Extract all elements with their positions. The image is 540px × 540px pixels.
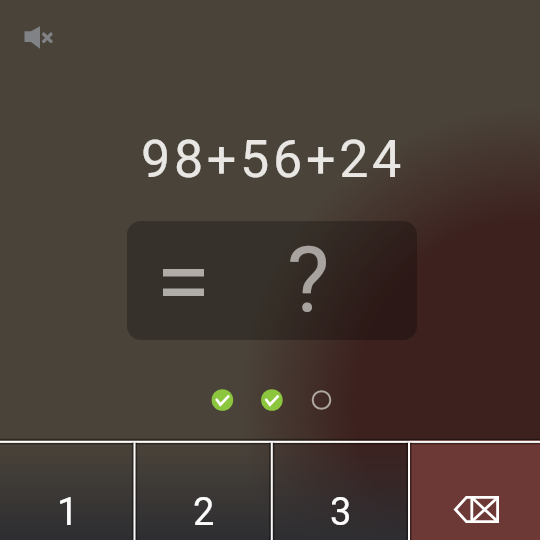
staticText: 1 bbox=[57, 490, 79, 535]
button[interactable]: Mute bbox=[14, 18, 62, 58]
staticText: 3 bbox=[330, 490, 352, 535]
button[interactable]: 1 bbox=[0, 440, 135, 540]
button[interactable]: Backspace bbox=[409, 440, 540, 540]
staticText: ? bbox=[287, 228, 330, 333]
button[interactable]: ? bbox=[127, 221, 417, 340]
staticText: 2 bbox=[193, 490, 215, 535]
button[interactable]: 2 bbox=[135, 440, 272, 540]
staticText: 98+56+24 bbox=[3, 129, 540, 190]
button[interactable]: 3 bbox=[272, 440, 409, 540]
